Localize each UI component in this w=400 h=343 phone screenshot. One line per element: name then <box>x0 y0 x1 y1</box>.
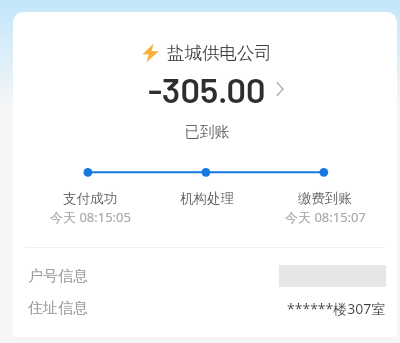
staticText: ******楼307室 <box>287 299 386 318</box>
staticText: 支付成功 <box>63 190 117 207</box>
staticText: -305.00 <box>148 68 266 110</box>
staticText: 户号信息 <box>28 267 88 286</box>
button[interactable]: 户号信息 <box>13 260 397 292</box>
staticText: 盐城供电公司 <box>167 42 272 64</box>
staticText: 机构处理 <box>180 190 234 207</box>
staticText: 缴费到账 <box>298 190 352 207</box>
button[interactable]: 住址信息 <box>13 292 397 324</box>
staticText: 今天 08:15:05 <box>50 208 131 226</box>
staticText: 住址信息 <box>28 299 88 318</box>
staticText: 今天 08:15:07 <box>285 208 366 226</box>
staticText: 已到账 <box>15 123 397 142</box>
